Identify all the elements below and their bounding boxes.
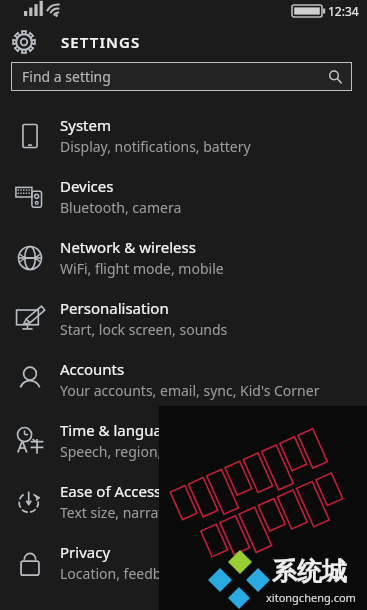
button[interactable]: Ease of Access bbox=[0, 471, 367, 532]
staticText: SETTINGS bbox=[61, 32, 141, 52]
staticText: Start, lock screen, sounds bbox=[60, 320, 228, 339]
staticText: Location, feedback bbox=[60, 564, 184, 583]
staticText: WiFi, flight mode, mobile bbox=[60, 259, 224, 278]
staticText: System bbox=[60, 115, 111, 135]
staticText: Time & language bbox=[60, 420, 180, 440]
button[interactable]: Time & language bbox=[0, 410, 367, 471]
staticText: Find a setting bbox=[22, 67, 111, 86]
button[interactable]: Network & wireless bbox=[0, 227, 367, 288]
staticText: Personalisation bbox=[60, 298, 169, 318]
staticText: Ease of Access bbox=[60, 481, 162, 501]
button[interactable]: Accounts bbox=[0, 349, 367, 410]
button[interactable]: Personalisation bbox=[0, 288, 367, 349]
staticText: Bluetooth, camera bbox=[60, 198, 182, 217]
button[interactable]: Find a setting bbox=[11, 62, 352, 91]
button[interactable]: Devices bbox=[0, 166, 367, 227]
staticText: Network & wireless bbox=[60, 237, 196, 257]
staticText: Devices bbox=[60, 176, 114, 196]
button[interactable]: Settings bbox=[0, 22, 367, 62]
staticText: xitongcheng.com bbox=[266, 590, 356, 605]
other: Settings bbox=[11, 29, 37, 55]
button[interactable]: Privacy bbox=[0, 532, 367, 593]
staticText: Your accounts, email, sync, Kid's Corner bbox=[60, 381, 320, 400]
staticText: 12:34 bbox=[328, 3, 359, 19]
staticText: Display, notifications, battery bbox=[60, 137, 251, 156]
staticText: Privacy bbox=[60, 542, 111, 562]
staticText: Accounts bbox=[60, 359, 125, 379]
staticText: 系统城 bbox=[272, 556, 347, 587]
button[interactable]: System bbox=[0, 105, 367, 166]
staticText: Text size, narrator, high contrast bbox=[60, 503, 270, 522]
staticText: Speech, region, keyboard bbox=[60, 442, 227, 461]
